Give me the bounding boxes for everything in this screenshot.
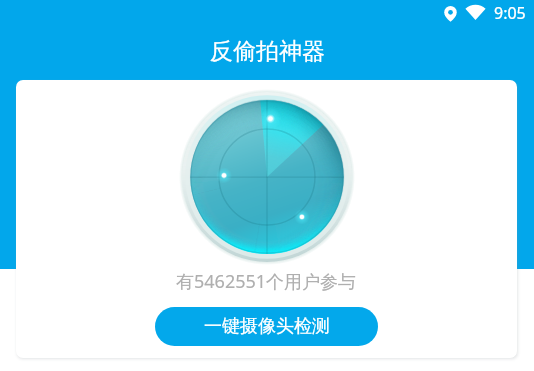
staticText: 有5462551个用户参与	[176, 269, 357, 294]
staticText: 一键摄像头检测	[204, 315, 330, 338]
button[interactable]: 一键摄像头检测	[155, 307, 378, 346]
staticText: 反偷拍神器	[210, 37, 325, 66]
staticText: 9:05	[494, 2, 526, 24]
